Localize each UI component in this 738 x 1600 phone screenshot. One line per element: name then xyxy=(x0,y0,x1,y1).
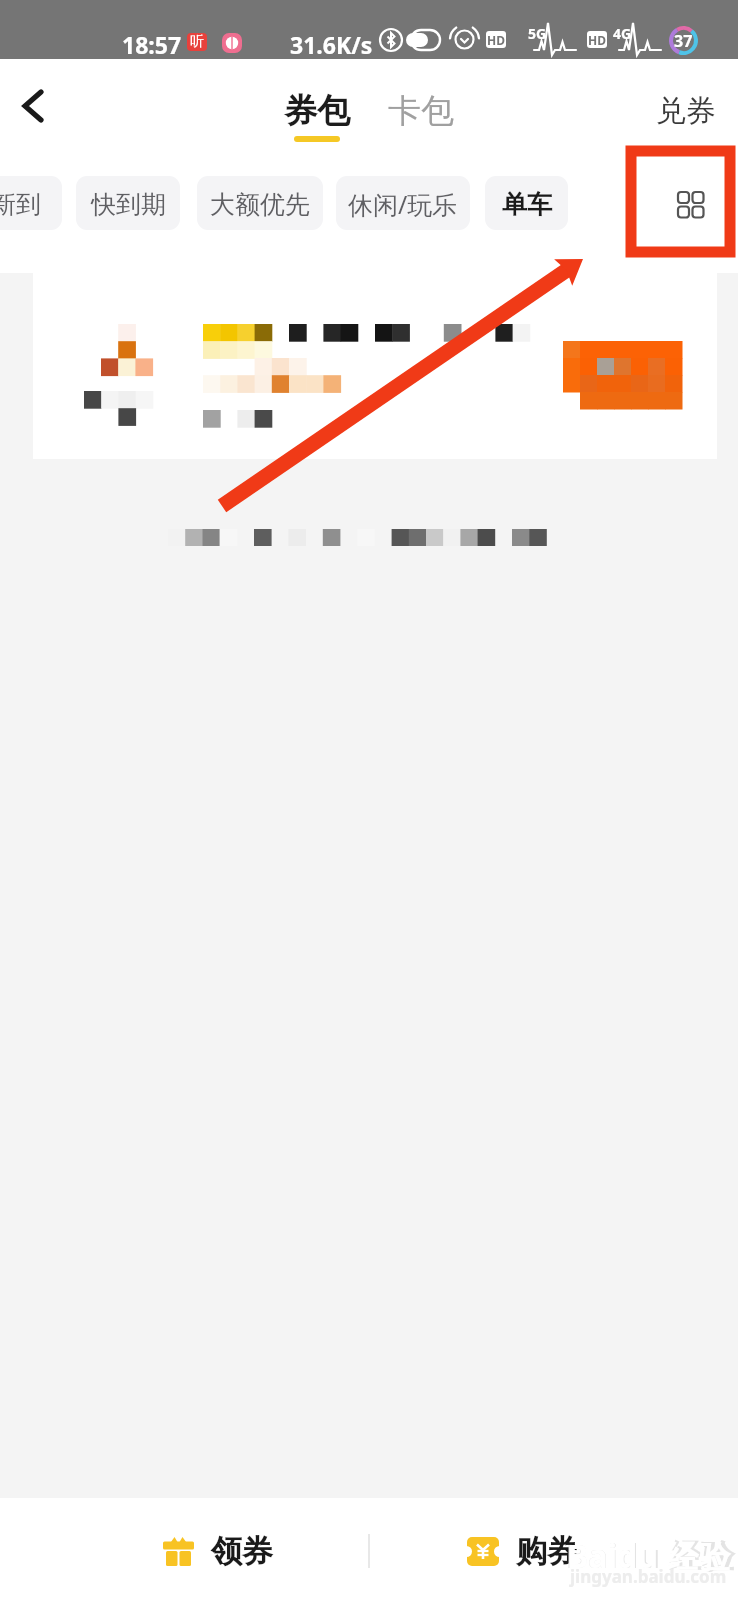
staticText: 快到期 xyxy=(91,189,166,220)
button[interactable]: 券包 xyxy=(278,82,356,142)
staticText: Baidu 经验 xyxy=(566,1533,735,1578)
staticText: 兑券 xyxy=(656,92,716,130)
staticText: 听 xyxy=(190,33,204,51)
staticText: 新到 xyxy=(0,189,41,220)
staticText: 18:57 xyxy=(122,29,182,60)
button[interactable]: 领券 xyxy=(152,1525,284,1577)
button[interactable]: 快到期 xyxy=(76,176,180,230)
staticText: 单车 xyxy=(502,189,552,220)
staticText: 4G xyxy=(613,24,632,43)
staticText: 购券 xyxy=(516,1532,578,1571)
staticText: 休闲/玩乐 xyxy=(348,187,458,221)
staticText: 卡包 xyxy=(388,90,454,132)
staticText: 领券 xyxy=(211,1532,273,1571)
button[interactable]: 单车 xyxy=(485,176,568,230)
staticText: jingyan.baidu.com xyxy=(570,1565,727,1588)
button[interactable]: 新到 xyxy=(0,176,62,230)
button[interactable]: 大额优先 xyxy=(197,176,323,230)
staticText: 37 xyxy=(674,30,693,52)
button[interactable]: 购券 xyxy=(456,1525,588,1577)
button[interactable]: 休闲/玩乐 xyxy=(336,176,470,230)
button[interactable]: 全部分类 xyxy=(662,171,718,235)
staticText: 31.6K/s xyxy=(290,29,373,60)
staticText: HD xyxy=(588,32,606,48)
staticText: 大额优先 xyxy=(210,189,310,220)
button[interactable]: 返回 xyxy=(6,70,60,124)
staticText: HD xyxy=(487,32,505,48)
staticText: Baidu 经验 xyxy=(567,1534,731,1578)
button[interactable]: 兑券 xyxy=(648,85,724,137)
staticText: 5G xyxy=(528,24,547,43)
staticText: 券包 xyxy=(284,90,350,132)
button[interactable]: 卡包 xyxy=(385,82,457,130)
button[interactable] xyxy=(33,273,717,459)
